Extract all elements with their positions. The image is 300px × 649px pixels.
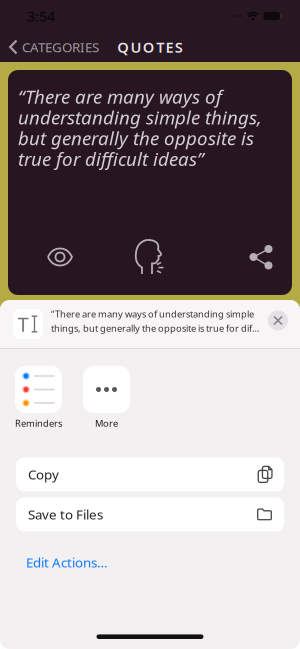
button[interactable]: Edit Actions…	[16, 531, 108, 571]
button[interactable]: CATEGORIES	[0, 38, 99, 56]
staticText: Reminders	[15, 417, 62, 429]
staticText: E	[165, 37, 173, 57]
staticText: “There are many ways of understanding si…	[18, 84, 262, 171]
button[interactable]: More	[83, 366, 130, 429]
staticText: Q	[117, 37, 129, 57]
staticText: 3:54	[27, 6, 55, 26]
staticText: Save to Files	[28, 505, 103, 523]
staticText: Copy	[28, 465, 59, 483]
staticText: O	[143, 37, 155, 57]
button[interactable]: Close	[268, 314, 288, 334]
button[interactable]: View	[47, 247, 73, 266]
button[interactable]: Reminders	[15, 366, 62, 429]
staticText: T	[17, 311, 28, 337]
staticText: “There are many ways of understanding si…	[51, 308, 254, 320]
staticText: T	[156, 37, 164, 57]
button[interactable]: Share	[248, 245, 273, 269]
staticText: CATEGORIES	[22, 38, 99, 56]
staticText: Edit Actions…	[26, 553, 108, 571]
button[interactable]: Copy	[16, 457, 284, 491]
button[interactable]: Speak	[134, 239, 165, 275]
staticText: More	[95, 417, 118, 429]
staticText: things, but generally the opposite is tr…	[51, 322, 259, 334]
staticText: U	[131, 37, 142, 57]
button[interactable]: Save to Files	[16, 497, 284, 531]
staticText: S	[175, 37, 183, 57]
